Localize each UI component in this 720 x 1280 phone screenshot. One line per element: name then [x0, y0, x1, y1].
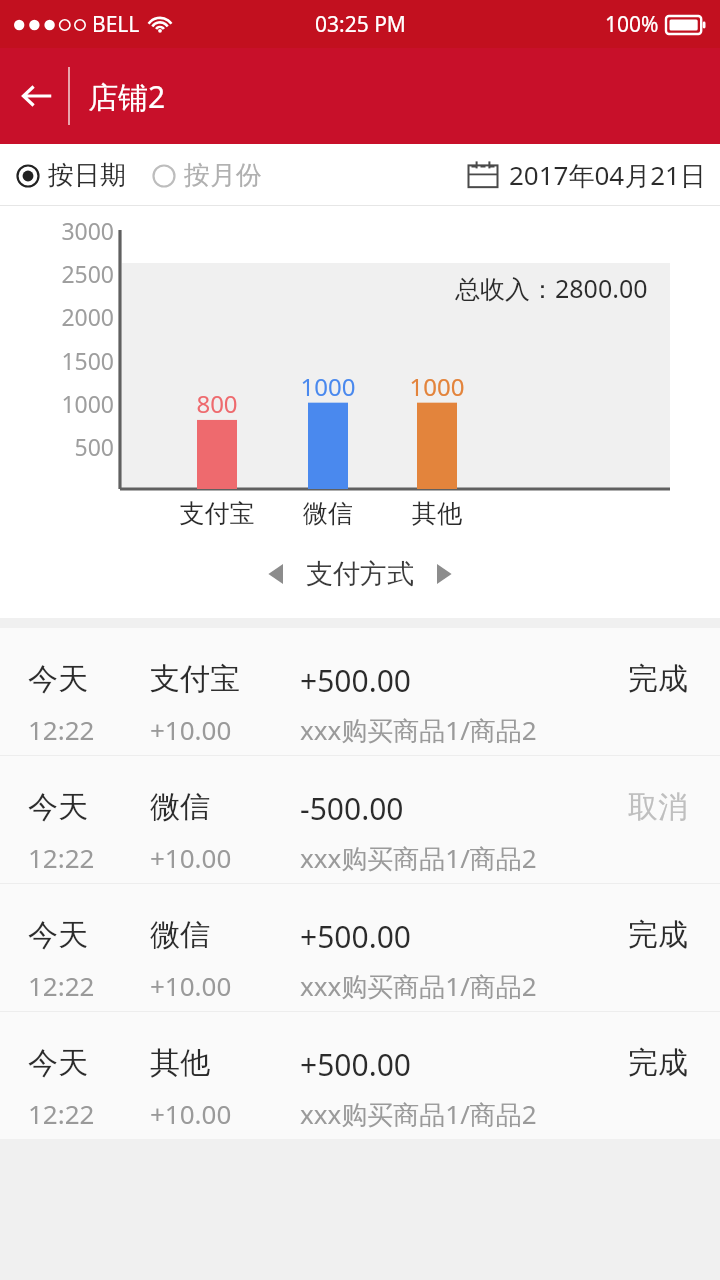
- staticText: +10.00: [150, 968, 232, 1003]
- staticText: +10.00: [150, 712, 232, 747]
- staticText: BELL: [92, 10, 140, 39]
- staticText: 微信: [150, 916, 210, 954]
- staticText: 1000: [387, 370, 487, 403]
- staticText: 其他: [150, 1044, 210, 1082]
- staticText: +500.00: [300, 1044, 411, 1085]
- staticText: 完成: [540, 660, 688, 698]
- staticText: -500.00: [300, 788, 404, 829]
- staticText: xxx购买商品1/商品2: [300, 1096, 537, 1132]
- staticText: 2017年04月21日: [509, 157, 706, 193]
- button[interactable]: 按月份: [152, 155, 262, 196]
- staticText: 支付宝: [150, 660, 240, 698]
- staticText: 微信: [268, 498, 388, 529]
- staticText: +500.00: [300, 916, 411, 957]
- staticText: 3000: [36, 215, 114, 246]
- staticText: +500.00: [300, 660, 411, 701]
- staticText: 今天: [28, 660, 88, 698]
- staticText: 2000: [36, 301, 114, 332]
- staticText: 今天: [28, 1044, 88, 1082]
- staticText: 12:22: [28, 712, 95, 747]
- staticText: 1000: [278, 370, 378, 403]
- staticText: 按日期: [48, 159, 126, 192]
- button[interactable]: Next: [422, 552, 466, 596]
- staticText: 2500: [36, 258, 114, 289]
- staticText: 总收入：2800.00: [455, 271, 648, 305]
- staticText: 500: [36, 431, 114, 462]
- staticText: 按月份: [184, 159, 262, 192]
- staticText: 12:22: [28, 968, 95, 1003]
- staticText: 其他: [377, 498, 497, 529]
- staticText: xxx购买商品1/商品2: [300, 840, 537, 876]
- staticText: 店铺2: [88, 76, 166, 117]
- button[interactable]: 今天: [0, 756, 720, 883]
- staticText: 1000: [36, 388, 114, 419]
- staticText: 12:22: [28, 1096, 95, 1131]
- button[interactable]: Previous: [254, 552, 298, 596]
- button[interactable]: 按日期: [16, 155, 126, 196]
- staticText: 今天: [28, 916, 88, 954]
- button[interactable]: 今天: [0, 884, 720, 1011]
- staticText: 完成: [540, 916, 688, 954]
- staticText: 12:22: [28, 840, 95, 875]
- staticText: 100%: [605, 10, 659, 39]
- button[interactable]: 今天: [0, 628, 720, 755]
- staticText: 完成: [540, 1044, 688, 1082]
- staticText: 今天: [28, 788, 88, 826]
- staticText: xxx购买商品1/商品2: [300, 968, 537, 1004]
- staticText: 1500: [36, 345, 114, 376]
- button[interactable]: 今天: [0, 1012, 720, 1139]
- staticText: xxx购买商品1/商品2: [300, 712, 537, 748]
- staticText: +10.00: [150, 840, 232, 875]
- staticText: 取消: [540, 788, 688, 826]
- staticText: 支付宝: [157, 498, 277, 529]
- staticText: 800: [167, 387, 267, 420]
- staticText: 03:25 PM: [315, 10, 406, 39]
- button[interactable]: Back: [8, 67, 66, 125]
- staticText: 微信: [150, 788, 210, 826]
- staticText: 支付方式: [306, 557, 414, 591]
- button[interactable]: 2017年04月21日: [467, 157, 706, 193]
- staticText: +10.00: [150, 1096, 232, 1131]
